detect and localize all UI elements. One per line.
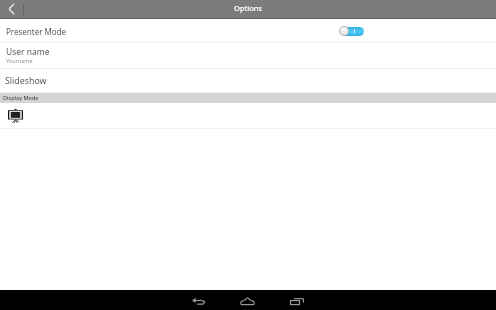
button[interactable]: User name [0,43,496,68]
staticText: Display Mode [3,94,39,101]
staticText: Presenter Mode [6,26,67,37]
button[interactable]: Back [175,290,222,310]
button[interactable]: Slideshow [0,69,496,92]
staticText: Options [0,3,496,13]
button[interactable]: Home [222,290,272,310]
staticText: Slideshow [5,75,47,87]
button[interactable]: Presenter Mode [0,19,496,42]
button[interactable]: Presenter Mode toggle [339,26,365,36]
button[interactable]: Back [0,0,23,18]
staticText: Yourname [6,57,33,64]
staticText: User name [6,46,50,58]
button[interactable]: Recent apps [272,290,322,310]
button[interactable]: Projector display mode [0,103,496,128]
